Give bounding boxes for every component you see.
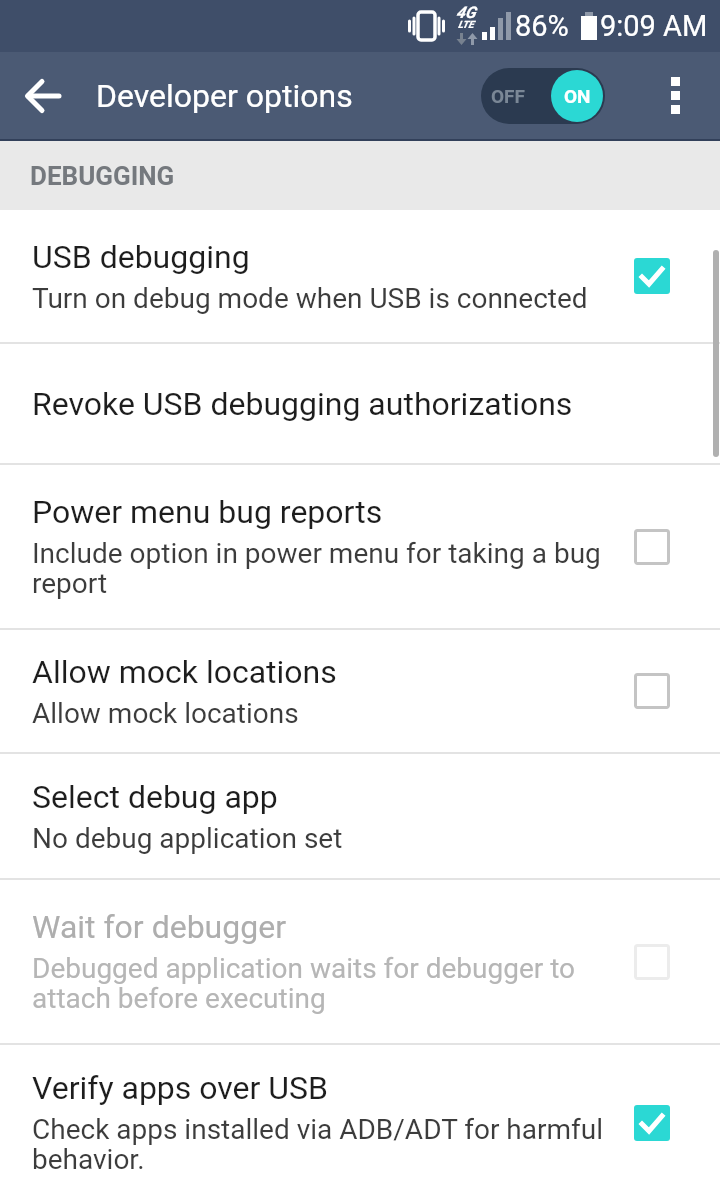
button[interactable]: Select debug app xyxy=(0,754,720,878)
staticText: 86% xyxy=(515,9,569,43)
staticText: Revoke USB debugging authorizations xyxy=(32,385,573,423)
staticText: Power menu bug reports xyxy=(32,493,383,531)
button[interactable]: Allow mock locations xyxy=(0,630,720,752)
staticText: LTE xyxy=(458,19,474,31)
staticText: Check apps installed via ADB/ADT for har… xyxy=(32,1113,604,1176)
button[interactable]: OFF xyxy=(481,68,605,124)
staticText: ON xyxy=(564,85,591,107)
staticText: Debugged application waits for debugger … xyxy=(32,952,576,1015)
staticText: Allow mock locations xyxy=(32,697,299,730)
staticText: 4G xyxy=(456,3,476,22)
staticText: 9:09 AM xyxy=(600,9,708,43)
button[interactable]: USB debugging xyxy=(0,210,720,342)
staticText: OFF xyxy=(491,85,525,107)
button[interactable]: Verify apps over USB xyxy=(0,1045,720,1200)
staticText: Turn on debug mode when USB is connected xyxy=(32,282,588,315)
staticText: No debug application set xyxy=(32,822,343,855)
button[interactable]: Power menu bug reports xyxy=(0,465,720,628)
button[interactable] xyxy=(0,52,86,139)
staticText: Allow mock locations xyxy=(32,653,337,691)
staticText: USB debugging xyxy=(32,238,250,276)
button[interactable]: Wait for debugger xyxy=(0,880,720,1043)
staticText: Verify apps over USB xyxy=(32,1069,329,1107)
staticText: DEBUGGING xyxy=(30,161,175,191)
staticText: Developer options xyxy=(96,77,353,115)
button[interactable]: Revoke USB debugging authorizations xyxy=(0,344,720,463)
button[interactable] xyxy=(671,77,680,114)
staticText: Include option in power menu for taking … xyxy=(32,537,601,600)
staticText: Wait for debugger xyxy=(32,908,286,946)
staticText: Select debug app xyxy=(32,778,278,816)
